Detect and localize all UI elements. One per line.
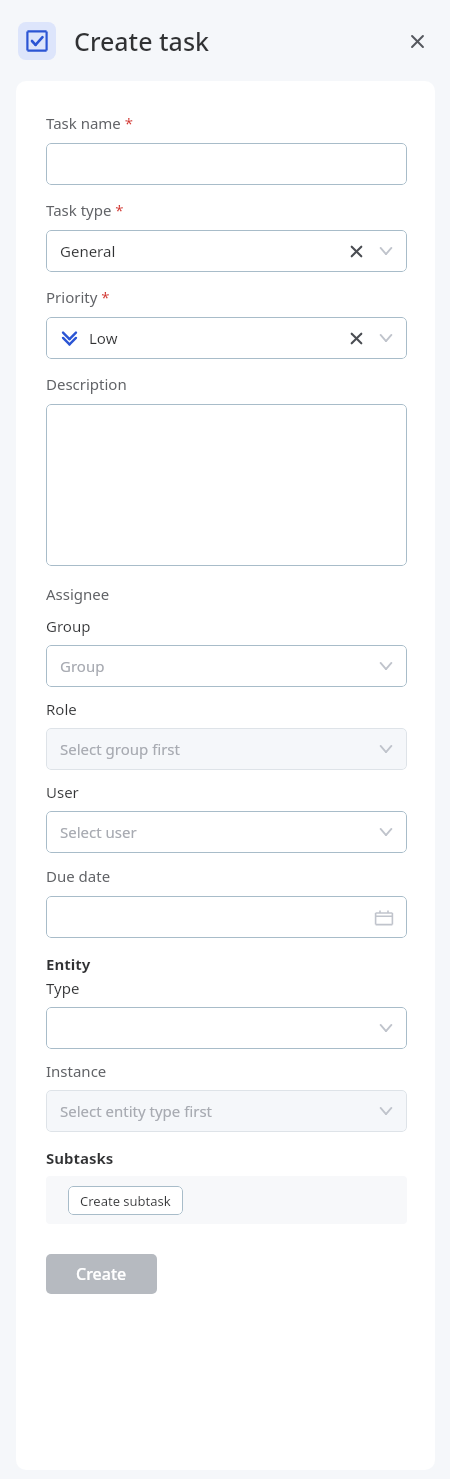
button[interactable]: Select group first — [46, 728, 407, 770]
button[interactable] — [46, 143, 407, 185]
staticText: Task type * — [46, 200, 124, 220]
staticText: Low — [89, 328, 118, 348]
staticText: Priority * — [46, 287, 110, 307]
staticText: Assignee — [46, 584, 110, 604]
staticText: Create — [76, 1263, 127, 1285]
staticText: Create task — [74, 24, 210, 58]
staticText: Instance — [46, 1061, 107, 1081]
staticText: General — [60, 241, 116, 261]
button[interactable]: Select user — [46, 811, 407, 853]
staticText: Group — [46, 616, 91, 636]
button[interactable]: Close — [400, 24, 434, 58]
button[interactable]: Create subtask — [68, 1186, 183, 1215]
staticText: Select group first — [60, 739, 180, 759]
staticText: Group — [60, 656, 105, 676]
staticText: Task name * — [46, 113, 133, 133]
staticText: Due date — [46, 866, 111, 886]
staticText: Subtasks — [46, 1148, 114, 1168]
button[interactable] — [46, 404, 407, 566]
staticText: Select entity type first — [60, 1101, 212, 1121]
staticText: Type — [46, 978, 80, 998]
button[interactable]: General — [46, 230, 407, 272]
button[interactable] — [46, 1007, 407, 1049]
staticText: User — [46, 782, 79, 802]
staticText: Create subtask — [80, 1192, 171, 1210]
staticText: Select user — [60, 822, 137, 842]
staticText: Description — [46, 374, 127, 394]
button[interactable]: Select entity type first — [46, 1090, 407, 1132]
button[interactable]: Low — [46, 317, 407, 359]
staticText: Role — [46, 699, 77, 719]
button[interactable]: Group — [46, 645, 407, 687]
staticText: Entity — [46, 954, 91, 974]
button[interactable] — [46, 896, 407, 938]
button[interactable]: Create — [46, 1254, 157, 1294]
